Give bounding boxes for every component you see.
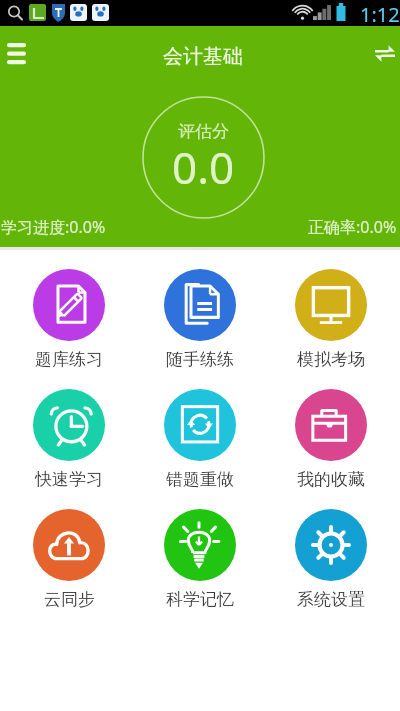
button[interactable]: 错题重做 — [143, 389, 257, 490]
button[interactable]: 题库练习 — [12, 269, 126, 370]
button[interactable]: Switch subject — [370, 38, 400, 68]
button[interactable]: 快速学习 — [12, 389, 126, 490]
staticText: 正确率:0.0% — [308, 216, 397, 238]
staticText: 系统设置 — [297, 589, 365, 610]
staticText: 题库练习 — [35, 349, 103, 370]
staticText: 我的收藏 — [297, 469, 365, 490]
staticText: 评估分 — [178, 121, 229, 142]
staticText: 科学记忆 — [166, 589, 234, 610]
button[interactable]: 系统设置 — [274, 509, 388, 610]
staticText: 云同步 — [44, 589, 95, 610]
staticText: 错题重做 — [166, 469, 234, 490]
button[interactable]: 随手练练 — [143, 269, 257, 370]
button[interactable]: 科学记忆 — [143, 509, 257, 610]
button[interactable]: 云同步 — [12, 509, 126, 610]
staticText: 随手练练 — [166, 349, 234, 370]
staticText: 0.0 — [172, 137, 235, 197]
staticText: 会计基础 — [163, 44, 243, 69]
staticText: 学习进度:0.0% — [1, 216, 106, 238]
staticText: 快速学习 — [35, 469, 103, 490]
staticText: 1:12 — [360, 1, 400, 27]
button[interactable]: Menu — [2, 39, 30, 67]
button[interactable]: 模拟考场 — [274, 269, 388, 370]
staticText: 模拟考场 — [297, 349, 365, 370]
button[interactable]: 我的收藏 — [274, 389, 388, 490]
